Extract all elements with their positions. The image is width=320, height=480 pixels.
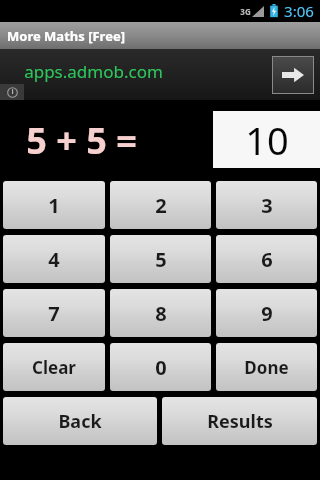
button[interactable]: apps.admob.com	[0, 49, 320, 100]
button[interactable]: Results	[162, 397, 317, 445]
button[interactable]: 0	[110, 343, 211, 391]
button[interactable]: Open ad	[273, 57, 313, 93]
staticText: 4	[48, 246, 60, 273]
staticText: Back	[58, 409, 102, 434]
staticText: 2	[155, 192, 167, 219]
staticText: 3	[261, 192, 273, 219]
staticText: 8	[155, 300, 167, 327]
button[interactable]: 6	[216, 235, 317, 283]
staticText: 3:06	[284, 1, 314, 21]
button[interactable]: 3	[216, 181, 317, 229]
button[interactable]: 7	[3, 289, 105, 337]
staticText: More Maths [Free]	[7, 27, 125, 45]
staticText: Results	[207, 409, 273, 434]
staticText: 3G	[240, 6, 251, 17]
button[interactable]: 2	[110, 181, 211, 229]
staticText: apps.admob.com	[24, 60, 163, 83]
button[interactable]: Back	[3, 397, 157, 445]
staticText: Clear	[32, 356, 76, 379]
button[interactable]: 5	[110, 235, 211, 283]
button[interactable]: 9	[216, 289, 317, 337]
staticText: 6	[261, 246, 273, 273]
staticText: 5 + 5 =	[26, 116, 137, 165]
staticText: 7	[48, 300, 60, 327]
staticText: 0	[155, 354, 167, 381]
button[interactable]: 1	[3, 181, 105, 229]
staticText: i	[11, 87, 14, 97]
staticText: Done	[244, 356, 289, 379]
button[interactable]: Clear	[3, 343, 105, 391]
button[interactable]: 4	[3, 235, 105, 283]
button[interactable]: Done	[216, 343, 317, 391]
button[interactable]: 8	[110, 289, 211, 337]
staticText: 9	[261, 300, 273, 327]
staticText: 1	[48, 192, 60, 219]
staticText: 5	[155, 246, 167, 273]
staticText: 10	[245, 114, 289, 166]
